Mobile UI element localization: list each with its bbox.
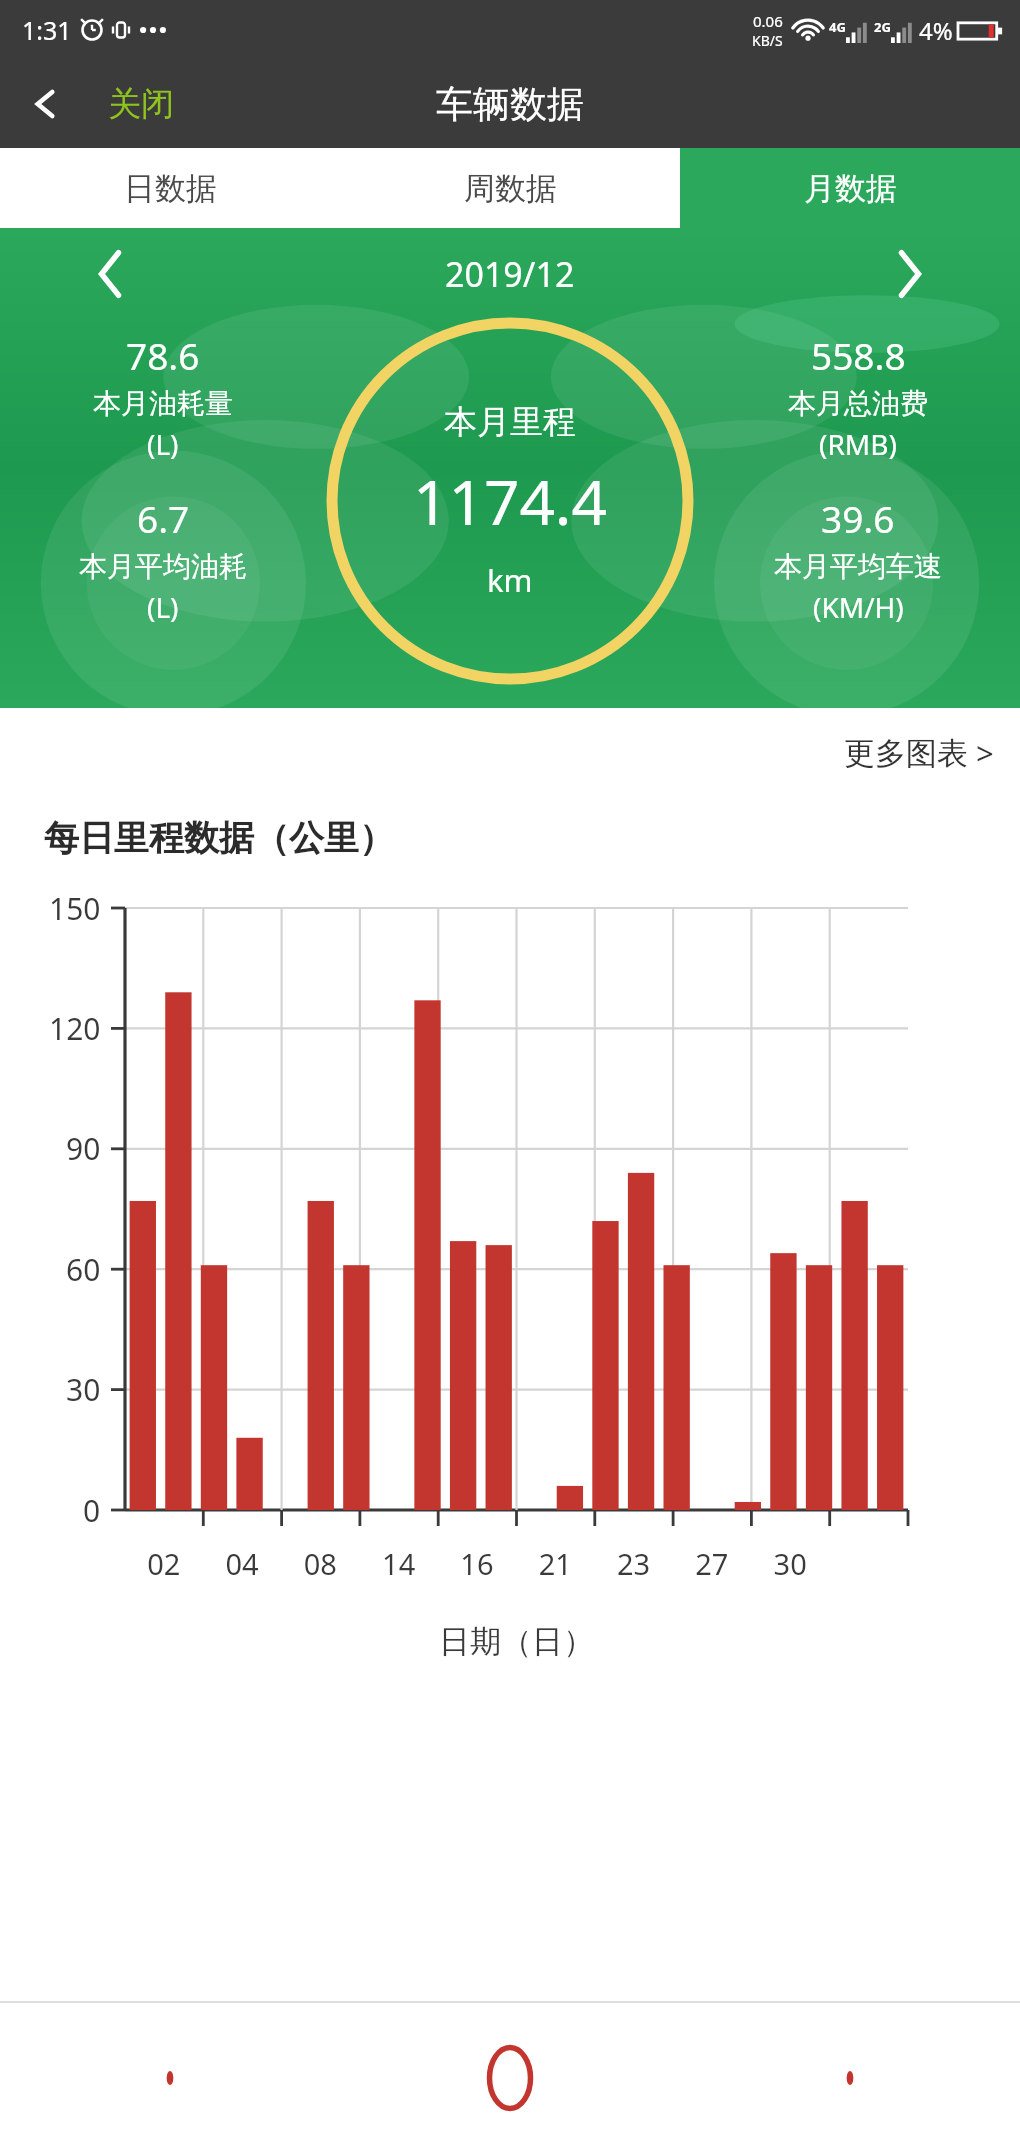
staticText: 每日里程数据（公里） (44, 816, 394, 860)
staticText: 日数据 (124, 169, 217, 208)
staticText: 周数据 (464, 169, 557, 208)
staticText: 0.06 (753, 11, 783, 31)
button[interactable]: Previous month (0, 228, 220, 320)
staticText: 1:31 (22, 13, 72, 47)
staticText: 更多图表 (844, 734, 968, 773)
staticText: km (487, 559, 533, 601)
staticText: (L) (147, 588, 179, 626)
staticText: (RMB) (819, 425, 897, 463)
staticText: 6.7 (137, 493, 190, 543)
button[interactable]: Home (340, 2003, 680, 2153)
staticText: 78.6 (126, 330, 200, 380)
button[interactable]: 周数据 (340, 148, 680, 228)
button[interactable]: 关闭 (100, 77, 182, 131)
button[interactable]: 月数据 (680, 148, 1020, 228)
staticText: 本月平均车速 (774, 549, 942, 584)
staticText: 2019/12 (445, 251, 575, 297)
staticText: 558.8 (811, 330, 906, 380)
staticText: 4% (919, 14, 953, 47)
staticText: KB/S (752, 31, 783, 50)
button[interactable]: Back (26, 78, 64, 130)
staticText: (L) (147, 425, 179, 463)
staticText: 车辆数据 (436, 81, 584, 128)
staticText: (KM/H) (813, 588, 904, 626)
staticText: 本月平均油耗 (79, 549, 247, 584)
staticText: 关闭 (108, 83, 174, 125)
button[interactable]: Next month (800, 228, 1020, 320)
staticText: 39.6 (821, 493, 895, 543)
staticText: > (976, 732, 994, 774)
staticText: 2G (874, 18, 891, 36)
button[interactable]: Back (0, 2003, 340, 2153)
staticText: 本月里程 (444, 401, 576, 443)
staticText: 1174.4 (413, 459, 607, 543)
staticText: 本月总油费 (788, 386, 928, 421)
button[interactable]: 更多图表 (818, 722, 1020, 784)
staticText: 本月油耗量 (93, 386, 233, 421)
button[interactable]: 日数据 (0, 148, 340, 228)
staticText: 4G (829, 18, 846, 36)
staticText: 月数据 (804, 169, 897, 208)
button[interactable]: Recent apps (680, 2003, 1020, 2153)
